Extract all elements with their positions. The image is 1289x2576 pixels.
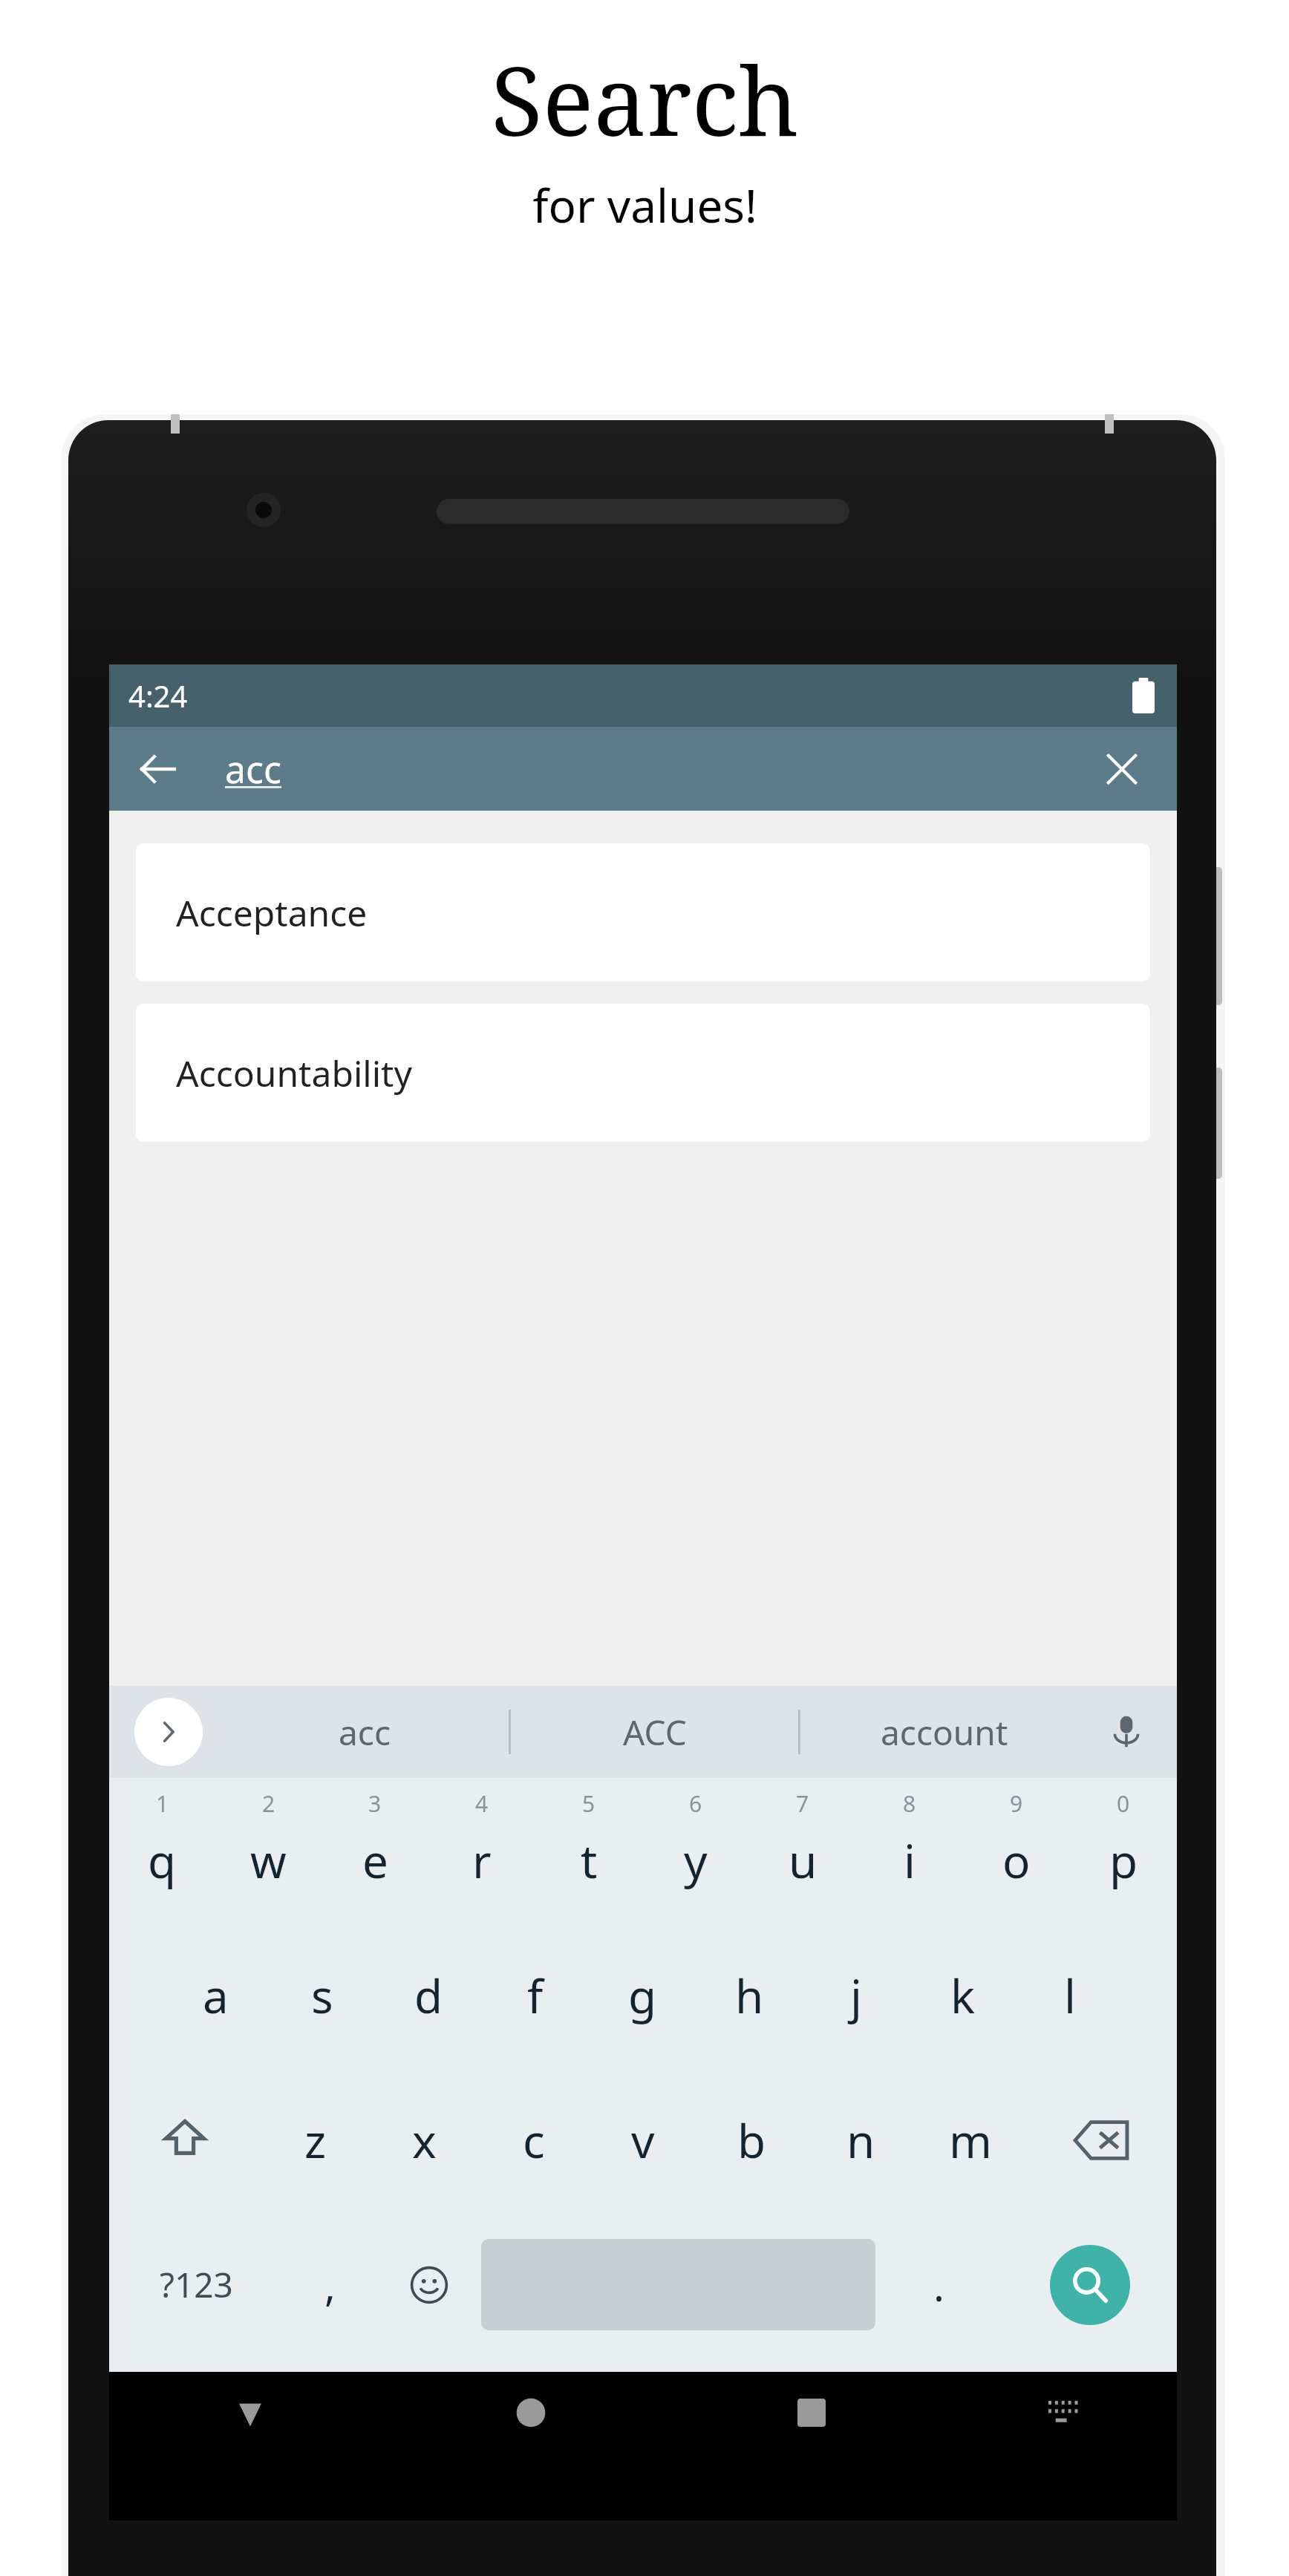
button[interactable]: g bbox=[589, 1923, 696, 2067]
button[interactable]: Voice input bbox=[1094, 1699, 1159, 1765]
staticText: Accountability bbox=[176, 1049, 412, 1097]
button[interactable]: account bbox=[800, 1686, 1088, 1778]
button[interactable]: h bbox=[696, 1923, 803, 2067]
button[interactable]: 8 bbox=[856, 1778, 963, 1923]
button[interactable]: Accountability bbox=[136, 1004, 1150, 1142]
staticText: a bbox=[203, 1964, 229, 2027]
button[interactable]: acc bbox=[225, 727, 282, 811]
button[interactable]: k bbox=[910, 1923, 1016, 2067]
staticText: g bbox=[628, 1964, 657, 2027]
button[interactable]: 4 bbox=[428, 1778, 535, 1923]
button[interactable]: s bbox=[269, 1923, 375, 2067]
staticText: l bbox=[1064, 1964, 1076, 2027]
staticText: ?123 bbox=[160, 2261, 233, 2308]
staticText: f bbox=[527, 1964, 544, 2027]
staticText: u bbox=[789, 1829, 818, 1892]
button[interactable]: 2 bbox=[215, 1778, 322, 1923]
button[interactable]: Acceptance bbox=[136, 843, 1150, 981]
button[interactable]: ?123 bbox=[109, 2212, 284, 2357]
staticText: for values! bbox=[532, 174, 757, 236]
staticText: ACC bbox=[623, 1709, 687, 1756]
staticText: 4:24 bbox=[128, 676, 188, 716]
staticText: p bbox=[1109, 1829, 1138, 1892]
button[interactable]: Backspace bbox=[1025, 2067, 1177, 2212]
staticText: i bbox=[904, 1829, 916, 1892]
button[interactable]: 5 bbox=[535, 1778, 642, 1923]
staticText: 4 bbox=[475, 1788, 489, 1819]
staticText: x bbox=[412, 2109, 437, 2171]
staticText: t bbox=[581, 1829, 598, 1892]
button[interactable]: 6 bbox=[642, 1778, 749, 1923]
button[interactable]: More suggestions bbox=[134, 1698, 203, 1766]
staticText: o bbox=[1002, 1829, 1031, 1892]
button[interactable]: n bbox=[806, 2067, 916, 2212]
button[interactable]: 9 bbox=[963, 1778, 1070, 1923]
staticText: 0 bbox=[1117, 1788, 1130, 1819]
button[interactable]: , bbox=[284, 2212, 376, 2357]
staticText: h bbox=[735, 1964, 764, 2027]
button[interactable]: 0 bbox=[1070, 1778, 1177, 1923]
staticText: e bbox=[362, 1829, 388, 1892]
button[interactable]: 3 bbox=[322, 1778, 428, 1923]
staticText: 7 bbox=[796, 1788, 809, 1819]
button[interactable]: 7 bbox=[749, 1778, 856, 1923]
button[interactable]: Home bbox=[391, 2372, 671, 2454]
button[interactable]: l bbox=[1016, 1923, 1123, 2067]
staticText: 9 bbox=[1010, 1788, 1023, 1819]
staticText: account bbox=[881, 1709, 1008, 1756]
button[interactable]: z bbox=[261, 2067, 370, 2212]
staticText: k bbox=[950, 1964, 976, 2027]
staticText: 2 bbox=[262, 1788, 275, 1819]
staticText: acc bbox=[339, 1709, 391, 1756]
button[interactable]: j bbox=[803, 1923, 910, 2067]
button[interactable]: d bbox=[375, 1923, 482, 2067]
staticText: q bbox=[148, 1829, 177, 1892]
button[interactable]: v bbox=[588, 2067, 697, 2212]
button[interactable]: Recents bbox=[671, 2372, 952, 2454]
button[interactable]: . bbox=[875, 2212, 1003, 2357]
button[interactable]: 1 bbox=[109, 1778, 215, 1923]
button[interactable]: Shift bbox=[109, 2067, 261, 2212]
button[interactable]: m bbox=[916, 2067, 1025, 2212]
button[interactable]: Clear search bbox=[1086, 733, 1158, 805]
staticText: v bbox=[631, 2109, 655, 2171]
staticText: b bbox=[737, 2109, 766, 2171]
staticText: c bbox=[523, 2109, 545, 2171]
staticText: s bbox=[311, 1964, 333, 2027]
staticText: m bbox=[949, 2109, 992, 2171]
staticText: , bbox=[324, 2257, 336, 2313]
staticText: w bbox=[250, 1829, 287, 1892]
button[interactable]: a bbox=[163, 1923, 269, 2067]
staticText: 5 bbox=[582, 1788, 595, 1819]
button[interactable]: Switch keyboard bbox=[952, 2372, 1177, 2454]
staticText: 6 bbox=[689, 1788, 702, 1819]
button[interactable]: f bbox=[482, 1923, 589, 2067]
staticText: y bbox=[684, 1829, 708, 1892]
button[interactable]: c bbox=[479, 2067, 588, 2212]
staticText: z bbox=[304, 2109, 327, 2171]
button[interactable]: x bbox=[370, 2067, 479, 2212]
button[interactable]: acc bbox=[221, 1686, 509, 1778]
staticText: n bbox=[846, 2109, 875, 2171]
staticText: d bbox=[414, 1964, 443, 2027]
staticText: 8 bbox=[903, 1788, 916, 1819]
button[interactable]: Back bbox=[123, 733, 194, 805]
staticText: Acceptance bbox=[176, 889, 368, 937]
staticText: 1 bbox=[156, 1788, 169, 1819]
staticText: Search bbox=[491, 34, 799, 163]
button[interactable]: Emoji bbox=[376, 2212, 481, 2357]
staticText: j bbox=[850, 1964, 862, 2027]
button[interactable]: b bbox=[697, 2067, 806, 2212]
staticText: . bbox=[933, 2257, 945, 2313]
staticText: r bbox=[472, 1829, 492, 1892]
staticText: acc bbox=[225, 744, 282, 794]
button[interactable]: Search bbox=[1050, 2245, 1130, 2325]
staticText: 3 bbox=[368, 1788, 382, 1819]
button[interactable]: Back bbox=[109, 2372, 391, 2454]
button[interactable]: ACC bbox=[511, 1686, 798, 1778]
